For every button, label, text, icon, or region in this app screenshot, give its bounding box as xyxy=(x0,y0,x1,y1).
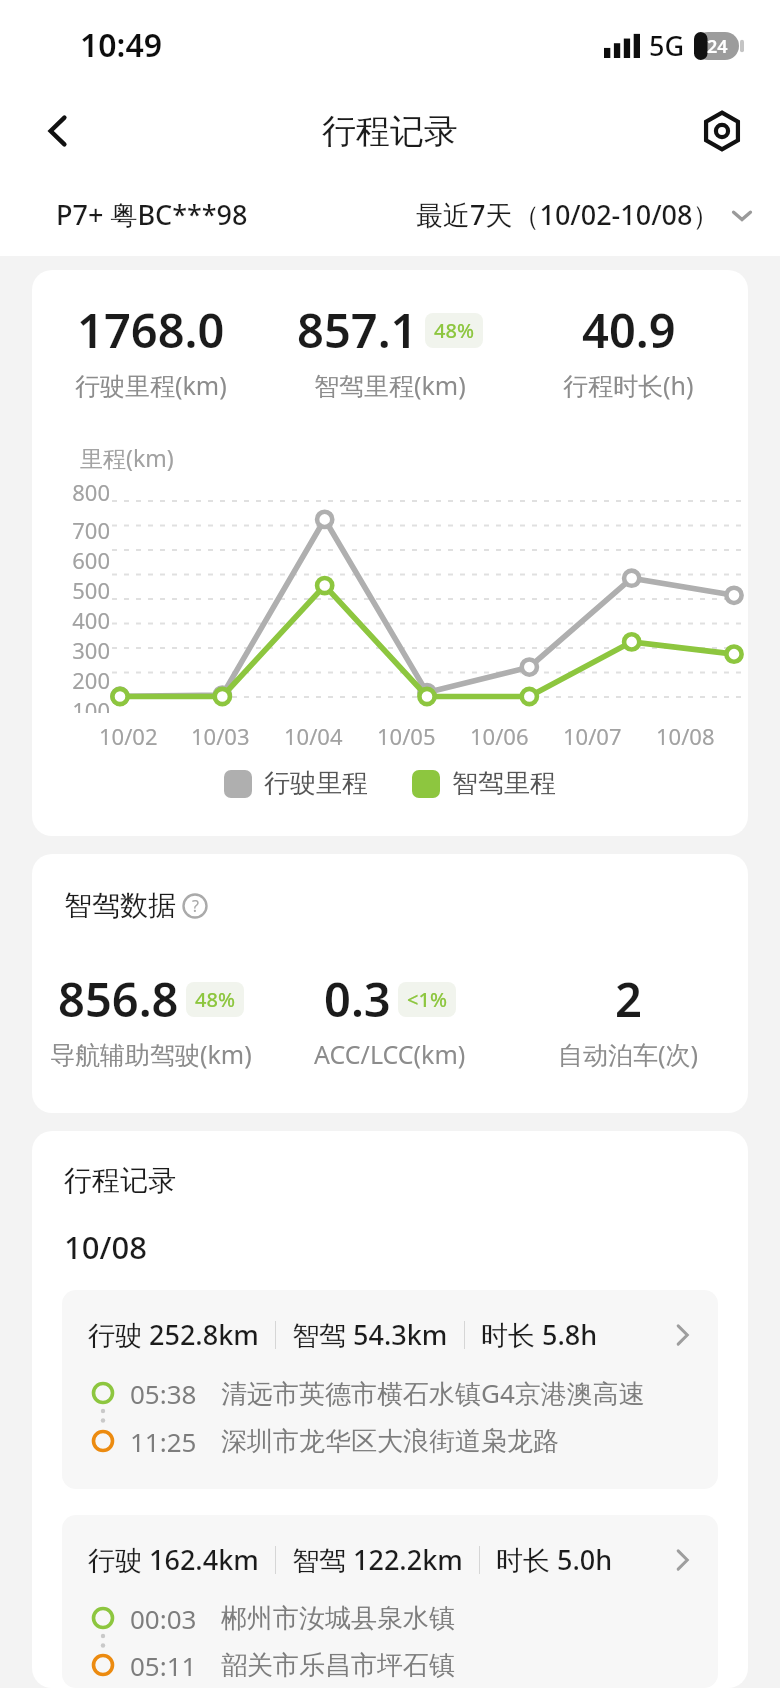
button[interactable]: 行驶 162.4km xyxy=(62,1515,718,1688)
staticText: 智驾 54.3km xyxy=(292,1316,448,1353)
staticText: 00:03 xyxy=(130,1601,197,1636)
staticText: 深圳市龙华区大浪街道枭龙路 xyxy=(221,1425,559,1458)
button[interactable]: Settings xyxy=(690,99,754,163)
staticText: 里程(km) xyxy=(80,442,174,473)
staticText: 10/05 xyxy=(377,721,436,751)
staticText: 500 xyxy=(72,575,110,605)
staticText: 300 xyxy=(72,635,110,665)
staticText: 韶关市乐昌市坪石镇 xyxy=(221,1649,455,1682)
staticText: 行程记录 xyxy=(64,1163,176,1198)
staticText: 700 xyxy=(72,515,110,545)
staticText: 行驶里程(km) xyxy=(75,368,227,402)
button[interactable]: 最近7天（10/02-10/08） xyxy=(416,196,756,233)
staticText: 1768.0 xyxy=(77,298,225,362)
staticText: 智驾里程(km) xyxy=(314,368,466,402)
staticText: 行驶里程 xyxy=(264,767,368,800)
staticText: 行程记录 xyxy=(322,110,458,153)
staticText: 856.8 xyxy=(58,967,179,1031)
staticText: 时长 5.0h xyxy=(496,1541,613,1578)
staticText: 10/08 xyxy=(64,1226,147,1268)
staticText: 自动泊车(次) xyxy=(558,1037,699,1071)
staticText: 10/07 xyxy=(563,721,622,751)
staticText: 400 xyxy=(72,605,110,635)
staticText: 40.9 xyxy=(582,298,676,362)
button[interactable]: Back xyxy=(26,99,90,163)
staticText: 智驾 122.2km xyxy=(292,1541,463,1578)
staticText: 10/03 xyxy=(191,721,250,751)
staticText: 11:25 xyxy=(130,1424,197,1459)
staticText: 24 xyxy=(707,34,728,59)
staticText: 0.3 xyxy=(324,967,391,1031)
button[interactable]: Info xyxy=(182,893,208,919)
staticText: ? xyxy=(192,895,199,917)
staticText: 05:38 xyxy=(130,1376,197,1411)
staticText: 48% xyxy=(434,317,474,344)
staticText: 智驾数据 xyxy=(64,888,176,923)
staticText: 导航辅助驾驶(km) xyxy=(50,1037,252,1071)
staticText: 10/02 xyxy=(99,721,158,751)
staticText: 行驶 162.4km xyxy=(88,1541,259,1578)
staticText: 5G xyxy=(649,27,685,64)
staticText: 2 xyxy=(615,967,642,1031)
staticText: 行程时长(h) xyxy=(563,368,694,402)
staticText: ACC/LCC(km) xyxy=(314,1037,466,1071)
staticText: 清远市英德市横石水镇G4京港澳高速 xyxy=(221,1375,645,1411)
staticText: 05:11 xyxy=(130,1648,197,1683)
staticText: 10/04 xyxy=(284,721,343,751)
staticText: 行驶 252.8km xyxy=(88,1316,259,1353)
staticText: 10/08 xyxy=(656,721,715,751)
staticText: <1% xyxy=(407,986,447,1013)
staticText: 600 xyxy=(72,545,110,575)
staticText: 10:49 xyxy=(80,23,163,67)
staticText: 时长 5.8h xyxy=(481,1316,598,1353)
staticText: 最近7天（10/02-10/08） xyxy=(416,196,720,233)
staticText: 857.1 xyxy=(297,298,418,362)
staticText: 智驾里程 xyxy=(452,767,556,800)
button[interactable]: 行驶 252.8km xyxy=(62,1290,718,1489)
button[interactable]: P7+ 粤BC***98 xyxy=(56,196,248,233)
staticText: 800 xyxy=(72,477,110,507)
staticText: 郴州市汝城县泉水镇 xyxy=(221,1602,455,1635)
staticText: 48% xyxy=(195,986,235,1013)
staticText: 200 xyxy=(72,665,110,695)
staticText: 10/06 xyxy=(470,721,529,751)
staticText: 100 xyxy=(72,695,110,713)
